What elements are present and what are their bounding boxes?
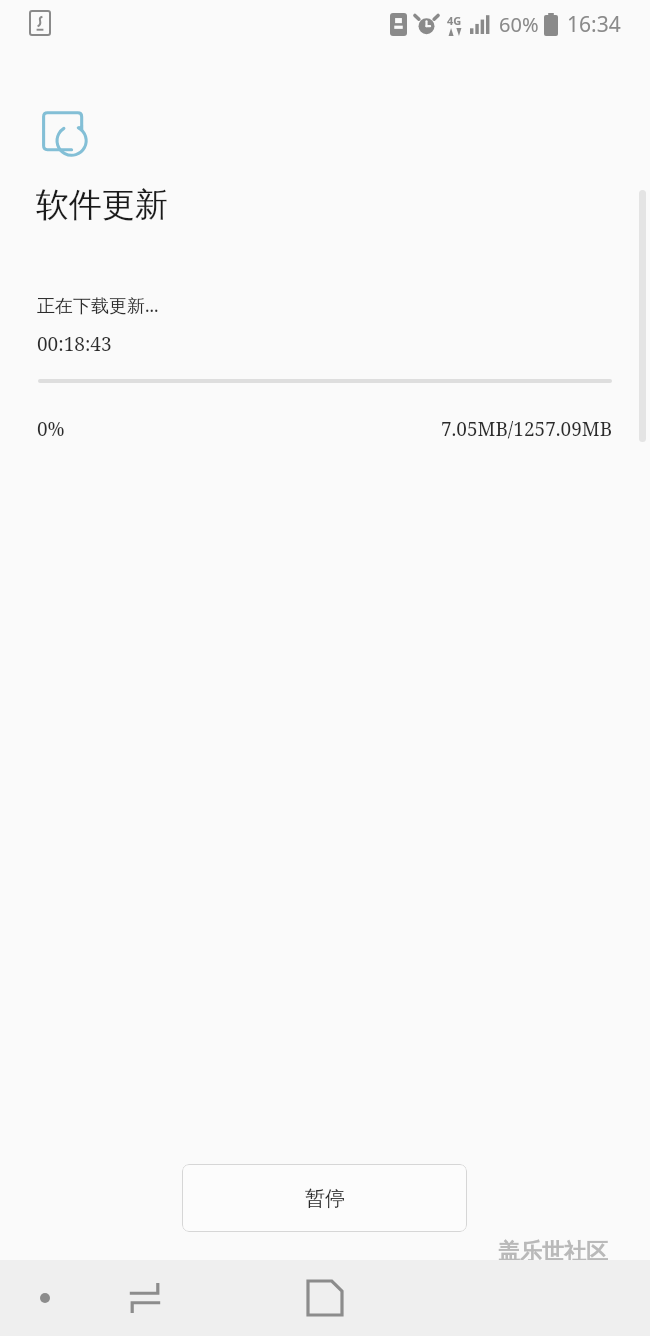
staticText: 正在下载更新... bbox=[37, 293, 159, 318]
staticText: 7.05MB/1257.09MB bbox=[441, 416, 613, 442]
staticText: 60% bbox=[499, 11, 539, 38]
button[interactable]: 暂停 bbox=[182, 1164, 467, 1232]
staticText: 00:18:43 bbox=[37, 331, 112, 357]
button[interactable]: Recents bbox=[10, 1263, 80, 1333]
button[interactable]: Home bbox=[285, 1260, 365, 1336]
staticText: 暂停 bbox=[305, 1186, 345, 1211]
staticText: 盖乐世社区 bbox=[498, 1238, 608, 1266]
button[interactable]: Back bbox=[108, 1261, 182, 1335]
staticText: 4G bbox=[447, 13, 462, 28]
staticText: 软件更新 bbox=[36, 184, 168, 226]
staticText: 16:34 bbox=[567, 10, 621, 39]
staticText: 0% bbox=[37, 416, 65, 442]
